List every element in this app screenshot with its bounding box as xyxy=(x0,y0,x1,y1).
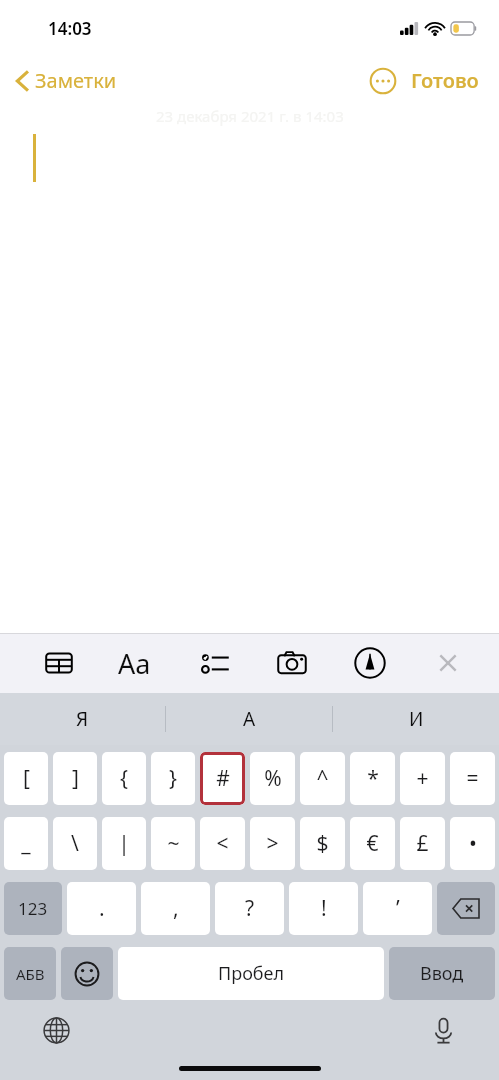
button[interactable]: Markup xyxy=(349,642,391,684)
button[interactable]: £ xyxy=(400,817,445,870)
staticText: ’ xyxy=(396,894,400,923)
button[interactable]: • xyxy=(450,817,495,870)
button[interactable]: Пробел xyxy=(118,947,384,1000)
staticText: Заметки xyxy=(35,67,117,94)
button[interactable]: И xyxy=(333,693,499,745)
button[interactable]: А xyxy=(166,693,332,745)
button[interactable]: More options xyxy=(365,63,401,99)
staticText: + xyxy=(416,764,429,793)
button[interactable]: , xyxy=(141,882,210,935)
staticText: % xyxy=(264,764,282,793)
button[interactable]: \ xyxy=(53,817,97,870)
button[interactable]: } xyxy=(151,752,195,805)
staticText: Пробел xyxy=(218,961,285,986)
button[interactable]: Checklist xyxy=(194,642,236,684)
button[interactable]: Camera xyxy=(271,642,313,684)
button[interactable]: = xyxy=(450,752,495,805)
button[interactable]: | xyxy=(102,817,146,870)
staticText: $ xyxy=(316,829,329,858)
staticText: { xyxy=(120,764,128,793)
button[interactable]: + xyxy=(400,752,445,805)
button[interactable]: ? xyxy=(215,882,284,935)
staticText: = xyxy=(466,764,479,793)
staticText: И xyxy=(409,706,424,732)
staticText: ? xyxy=(245,894,255,923)
staticText: * xyxy=(367,764,379,793)
staticText: > xyxy=(266,829,279,858)
button[interactable]: > xyxy=(250,817,295,870)
staticText: | xyxy=(118,829,130,858)
staticText: # xyxy=(216,764,230,793)
button[interactable]: { xyxy=(102,752,146,805)
button[interactable]: < xyxy=(200,817,245,870)
button[interactable]: Table xyxy=(38,642,80,684)
staticText: } xyxy=(169,764,177,793)
button[interactable]: # xyxy=(200,752,245,805)
button[interactable]: Я xyxy=(0,693,165,745)
button[interactable]: Switch keyboard xyxy=(36,1010,76,1050)
staticText: Я xyxy=(76,706,89,732)
staticText: Готово xyxy=(411,67,479,94)
button[interactable]: Close keyboard xyxy=(427,642,469,684)
staticText: € xyxy=(366,829,379,858)
staticText: £ xyxy=(416,829,429,858)
staticText: ! xyxy=(321,894,327,923)
button[interactable]: Заметки xyxy=(12,63,121,98)
button[interactable]: 123 xyxy=(4,882,62,935)
staticText: АБВ xyxy=(16,964,45,984)
button[interactable]: ’ xyxy=(363,882,432,935)
staticText: . xyxy=(99,894,105,923)
staticText: А xyxy=(243,706,256,732)
staticText: , xyxy=(173,894,179,923)
button[interactable]: АБВ xyxy=(4,947,56,1000)
staticText: \ xyxy=(71,829,79,858)
staticText: Aa xyxy=(118,645,151,682)
button[interactable]: Ввод xyxy=(389,947,495,1000)
button[interactable]: ] xyxy=(53,752,97,805)
staticText: 14:03 xyxy=(48,17,92,40)
button[interactable]: ~ xyxy=(151,817,195,870)
button[interactable]: [ xyxy=(4,752,48,805)
button[interactable]: Emoji xyxy=(61,947,113,1000)
staticText: ] xyxy=(72,764,79,793)
staticText: • xyxy=(469,829,477,858)
button[interactable]: ! xyxy=(289,882,358,935)
button[interactable]: * xyxy=(350,752,395,805)
staticText: _ xyxy=(21,829,31,858)
button[interactable]: _ xyxy=(4,817,48,870)
staticText: 123 xyxy=(18,897,48,920)
button[interactable]: Готово xyxy=(407,61,483,100)
button[interactable]: . xyxy=(67,882,136,935)
staticText: ~ xyxy=(167,829,180,858)
button[interactable]: $ xyxy=(300,817,345,870)
staticText: 23 декабря 2021 г. в 14:03 xyxy=(156,106,344,126)
button[interactable]: % xyxy=(250,752,295,805)
staticText: [ xyxy=(23,764,30,793)
button[interactable]: € xyxy=(350,817,395,870)
button[interactable]: Backspace xyxy=(437,882,495,935)
staticText: < xyxy=(216,829,229,858)
button[interactable]: ^ xyxy=(300,752,345,805)
staticText: ^ xyxy=(316,764,329,793)
button[interactable]: Text format xyxy=(116,642,158,684)
button[interactable]: Dictate xyxy=(423,1010,463,1050)
staticText: Ввод xyxy=(420,961,464,986)
